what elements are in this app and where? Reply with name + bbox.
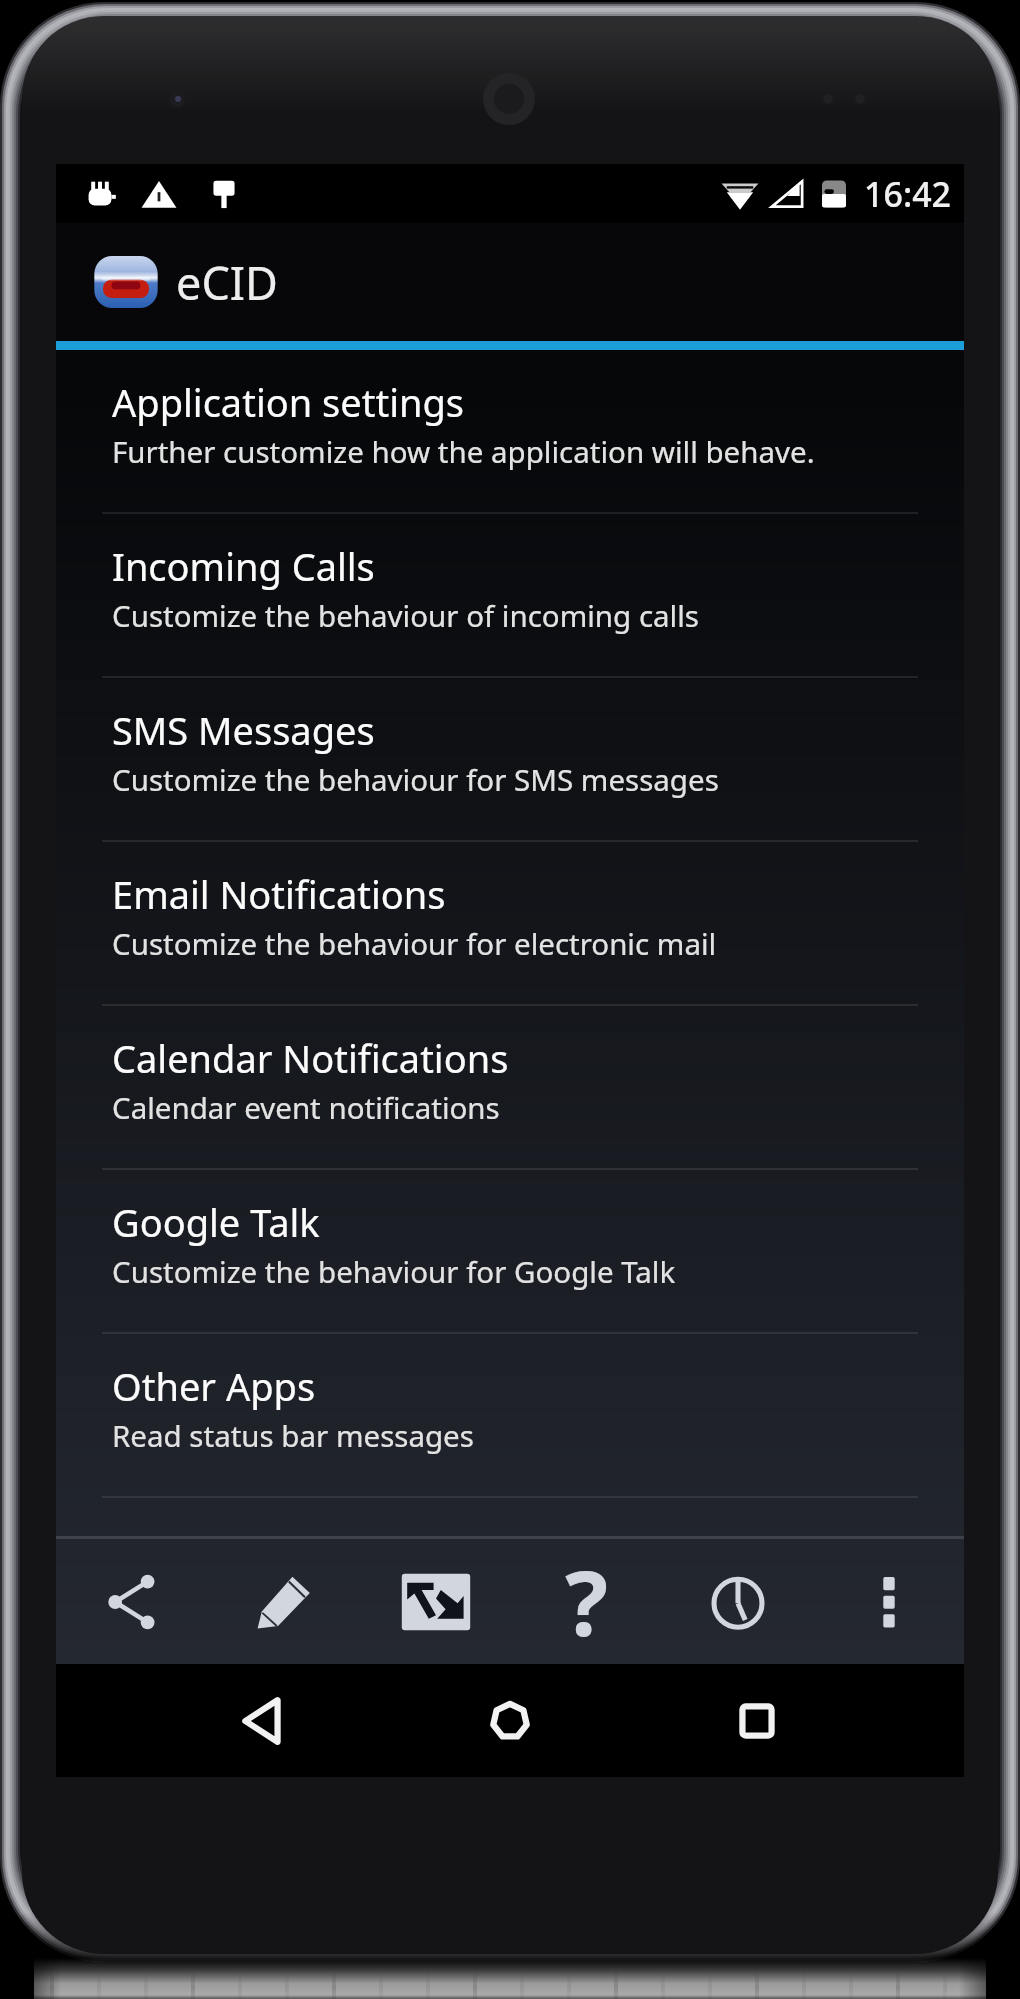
staticText: Read status bar messages xyxy=(112,1415,474,1455)
button[interactable]: More options xyxy=(813,1539,964,1664)
button[interactable]: Home xyxy=(454,1664,566,1777)
staticText: Further customize how the application wi… xyxy=(112,431,815,471)
button[interactable]: Snooze xyxy=(662,1539,813,1664)
staticText: ? xyxy=(565,1540,608,1663)
staticText: Customize the behaviour of incoming call… xyxy=(112,595,699,635)
button[interactable]: Application settings xyxy=(56,350,964,514)
button[interactable]: eCID xyxy=(56,223,964,341)
button[interactable]: Set as wallpaper xyxy=(360,1539,511,1664)
button[interactable]: Help xyxy=(511,1539,662,1664)
button[interactable]: Incoming Calls xyxy=(56,514,964,678)
button[interactable]: Edit xyxy=(208,1539,360,1664)
staticText: Other Apps xyxy=(112,1360,316,1412)
button[interactable]: Google Talk xyxy=(56,1170,964,1334)
staticText: Calendar Notifications xyxy=(112,1032,509,1084)
staticText: Google Talk xyxy=(112,1196,320,1248)
button[interactable]: Other Apps xyxy=(56,1334,964,1498)
staticText: 16:42 xyxy=(864,171,952,217)
staticText: Customize the behaviour for SMS messages xyxy=(112,759,719,799)
staticText: Application settings xyxy=(112,376,464,428)
staticText: Email Notifications xyxy=(112,868,446,920)
staticText: Calendar event notifications xyxy=(112,1087,500,1127)
button[interactable]: SMS Messages xyxy=(56,678,964,842)
button[interactable]: Back xyxy=(207,1664,319,1777)
button[interactable]: Email Notifications xyxy=(56,842,964,1006)
button[interactable]: Share xyxy=(56,1539,208,1664)
staticText: eCID xyxy=(176,252,278,313)
staticText: Incoming Calls xyxy=(112,540,375,592)
button[interactable]: Recents xyxy=(701,1664,813,1777)
button[interactable]: Calendar Notifications xyxy=(56,1006,964,1170)
staticText: Customize the behaviour for Google Talk xyxy=(112,1251,676,1291)
staticText: SMS Messages xyxy=(112,704,375,756)
staticText: Customize the behaviour for electronic m… xyxy=(112,923,717,963)
